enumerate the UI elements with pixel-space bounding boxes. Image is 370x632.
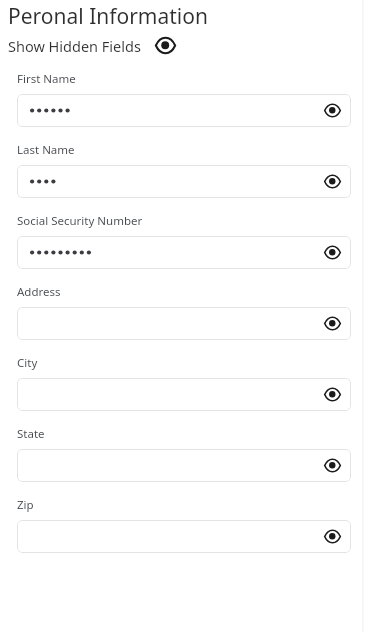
other: Toggle visibility for Last Name [324, 173, 341, 190]
other: Toggle visibility for Zip [324, 528, 341, 545]
staticText: Last Name [17, 142, 75, 158]
button[interactable]: Toggle visibility for First Name [17, 94, 351, 127]
button[interactable]: Toggle visibility for Social Security Nu… [17, 236, 351, 269]
staticText: Social Security Number [17, 213, 143, 229]
other: Show hidden fields [155, 35, 176, 56]
staticText: First Name [17, 71, 76, 87]
button[interactable]: Toggle visibility for Zip [17, 520, 351, 553]
other: Toggle visibility for First Name [324, 102, 341, 119]
staticText: Zip [17, 497, 34, 513]
button[interactable]: Toggle visibility for State [17, 449, 351, 482]
staticText: City [17, 355, 38, 371]
other: Toggle visibility for Social Security Nu… [324, 244, 341, 261]
other: Toggle visibility for Address [324, 315, 341, 332]
other: Toggle visibility for State [324, 457, 341, 474]
button[interactable]: Show Hidden Fields [8, 32, 176, 59]
button[interactable]: Toggle visibility for Last Name [17, 165, 351, 198]
staticText: Peronal Information [8, 2, 208, 31]
staticText: State [17, 426, 45, 442]
button[interactable]: Toggle visibility for Address [17, 307, 351, 340]
staticText: Address [17, 284, 61, 300]
other: Toggle visibility for City [324, 386, 341, 403]
staticText: Show Hidden Fields [8, 36, 141, 56]
button[interactable]: Toggle visibility for City [17, 378, 351, 411]
